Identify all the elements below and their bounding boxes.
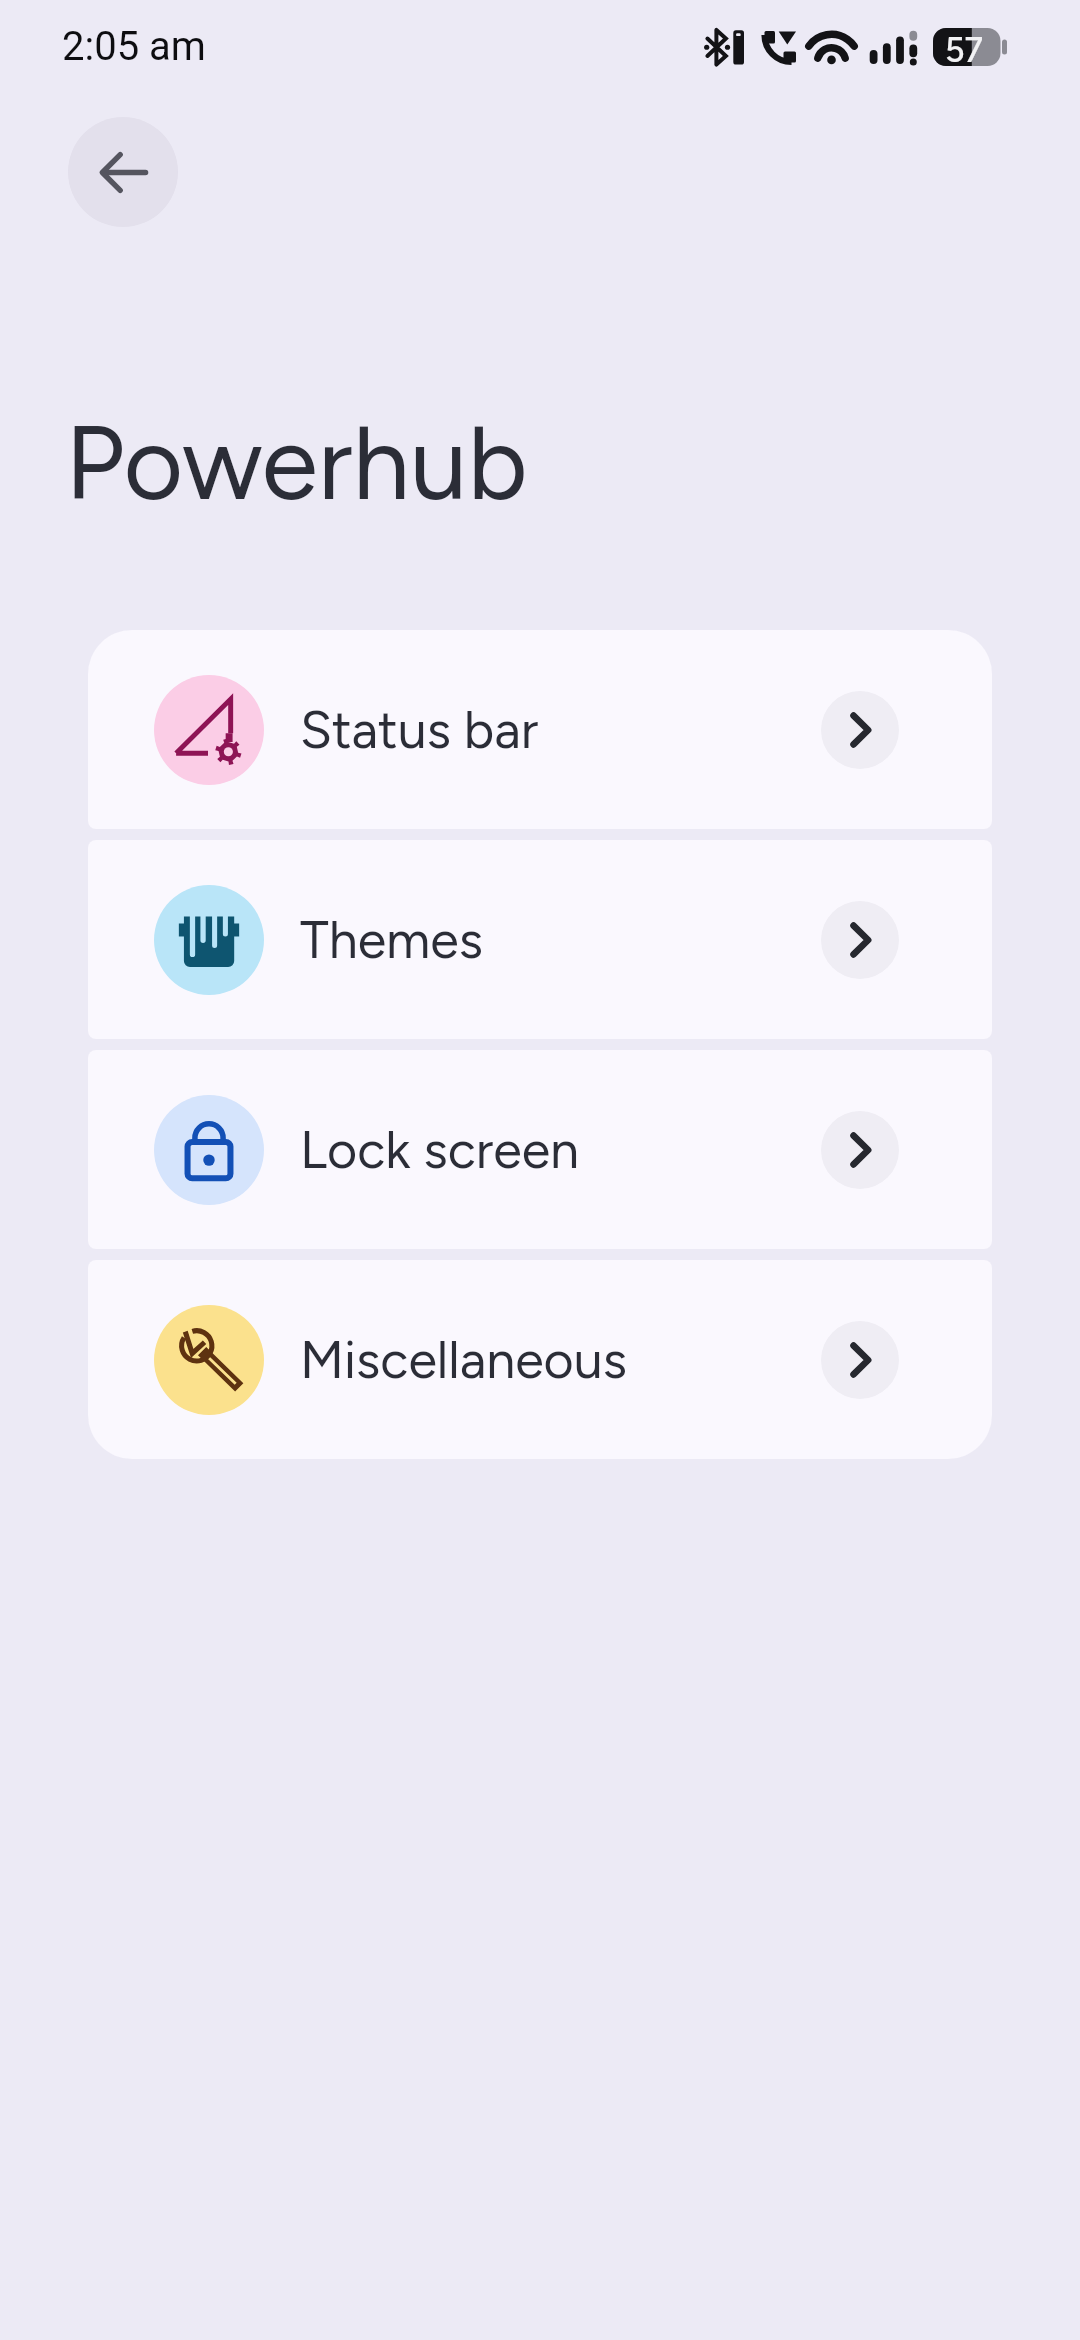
button[interactable]: Status bar xyxy=(88,630,992,829)
staticText: Lock screen xyxy=(300,1119,580,1181)
staticText: Themes xyxy=(300,909,483,971)
button[interactable]: Open Lock screen xyxy=(821,1111,899,1189)
staticText: Miscellaneous xyxy=(300,1329,628,1391)
button[interactable]: Open Themes xyxy=(821,901,899,979)
button[interactable]: Miscellaneous xyxy=(88,1260,992,1459)
staticText: 2:05 am xyxy=(62,23,206,70)
staticText: Status bar xyxy=(300,699,539,761)
button[interactable]: Back xyxy=(68,117,178,227)
staticText: Powerhub xyxy=(65,401,528,525)
button[interactable]: Open Status bar xyxy=(821,691,899,769)
button[interactable]: Lock screen xyxy=(88,1050,992,1249)
staticText: 57 xyxy=(945,30,984,71)
button[interactable]: Open Miscellaneous xyxy=(821,1321,899,1399)
button[interactable]: Themes xyxy=(88,840,992,1039)
